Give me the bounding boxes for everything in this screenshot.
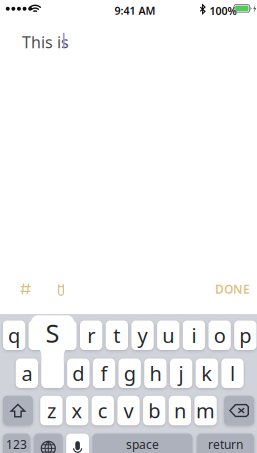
button[interactable]: x: [66, 396, 88, 425]
staticText: j: [179, 360, 184, 387]
staticText: return: [208, 436, 243, 452]
staticText: S: [46, 316, 60, 350]
button[interactable]: f: [93, 358, 115, 388]
staticText: y: [138, 322, 148, 349]
button[interactable]: Delete: [224, 396, 254, 425]
button[interactable]: k: [196, 358, 218, 388]
button[interactable]: w: [29, 320, 51, 350]
staticText: t: [113, 322, 120, 349]
button[interactable]: m: [194, 396, 217, 425]
button[interactable]: DONE: [215, 275, 250, 303]
staticText: i: [191, 322, 196, 349]
button[interactable]: h: [144, 358, 166, 388]
button[interactable]: a: [16, 358, 38, 388]
staticText: z: [47, 397, 56, 424]
button[interactable]: q: [3, 320, 25, 350]
button[interactable]: r: [80, 320, 102, 350]
staticText: k: [201, 360, 212, 387]
staticText: 9:41 AM: [114, 4, 155, 18]
button[interactable]: Attach file: [47, 275, 75, 303]
staticText: n: [174, 397, 186, 424]
staticText: d: [72, 360, 84, 387]
staticText: h: [149, 360, 161, 387]
staticText: 100%: [210, 4, 237, 18]
button[interactable]: y: [131, 320, 154, 350]
staticText: w: [32, 322, 48, 349]
staticText: l: [230, 360, 235, 387]
staticText: This is: [22, 31, 69, 53]
staticText: b: [148, 397, 160, 424]
button[interactable]: Hashtag: [12, 275, 40, 303]
button[interactable]: o: [208, 320, 231, 350]
button[interactable]: e: [54, 320, 77, 350]
button[interactable]: Shift: [3, 396, 33, 425]
staticText: c: [98, 397, 108, 424]
staticText: u: [162, 322, 174, 349]
button[interactable]: v: [117, 396, 140, 425]
staticText: f: [100, 360, 107, 387]
button[interactable]: Dictate: [66, 434, 89, 453]
button[interactable]: 123: [3, 434, 30, 453]
button[interactable]: u: [157, 320, 179, 350]
button[interactable]: return: [197, 434, 254, 453]
button[interactable]: z: [40, 396, 62, 425]
staticText: 123: [6, 436, 27, 452]
button[interactable]: g: [118, 358, 141, 388]
button[interactable]: i: [183, 320, 205, 350]
staticText: p: [239, 322, 251, 349]
button[interactable]: c: [92, 396, 114, 425]
staticText: m: [196, 397, 215, 424]
button[interactable]: j: [170, 358, 192, 388]
button[interactable]: s: [41, 358, 64, 388]
button[interactable]: d: [67, 358, 89, 388]
staticText: DONE: [215, 281, 250, 297]
staticText: space: [126, 436, 159, 452]
staticText: v: [123, 397, 133, 424]
button[interactable]: b: [143, 396, 165, 425]
staticText: g: [124, 360, 136, 387]
button[interactable]: p: [234, 320, 256, 350]
staticText: q: [8, 322, 20, 349]
button[interactable]: l: [221, 358, 244, 388]
staticText: r: [87, 322, 95, 349]
button[interactable]: t: [106, 320, 128, 350]
button[interactable]: Next keyboard: [34, 434, 63, 453]
button[interactable]: space: [92, 434, 192, 453]
staticText: o: [214, 322, 226, 349]
button[interactable]: n: [169, 396, 191, 425]
staticText: x: [72, 397, 83, 424]
staticText: a: [21, 360, 32, 387]
